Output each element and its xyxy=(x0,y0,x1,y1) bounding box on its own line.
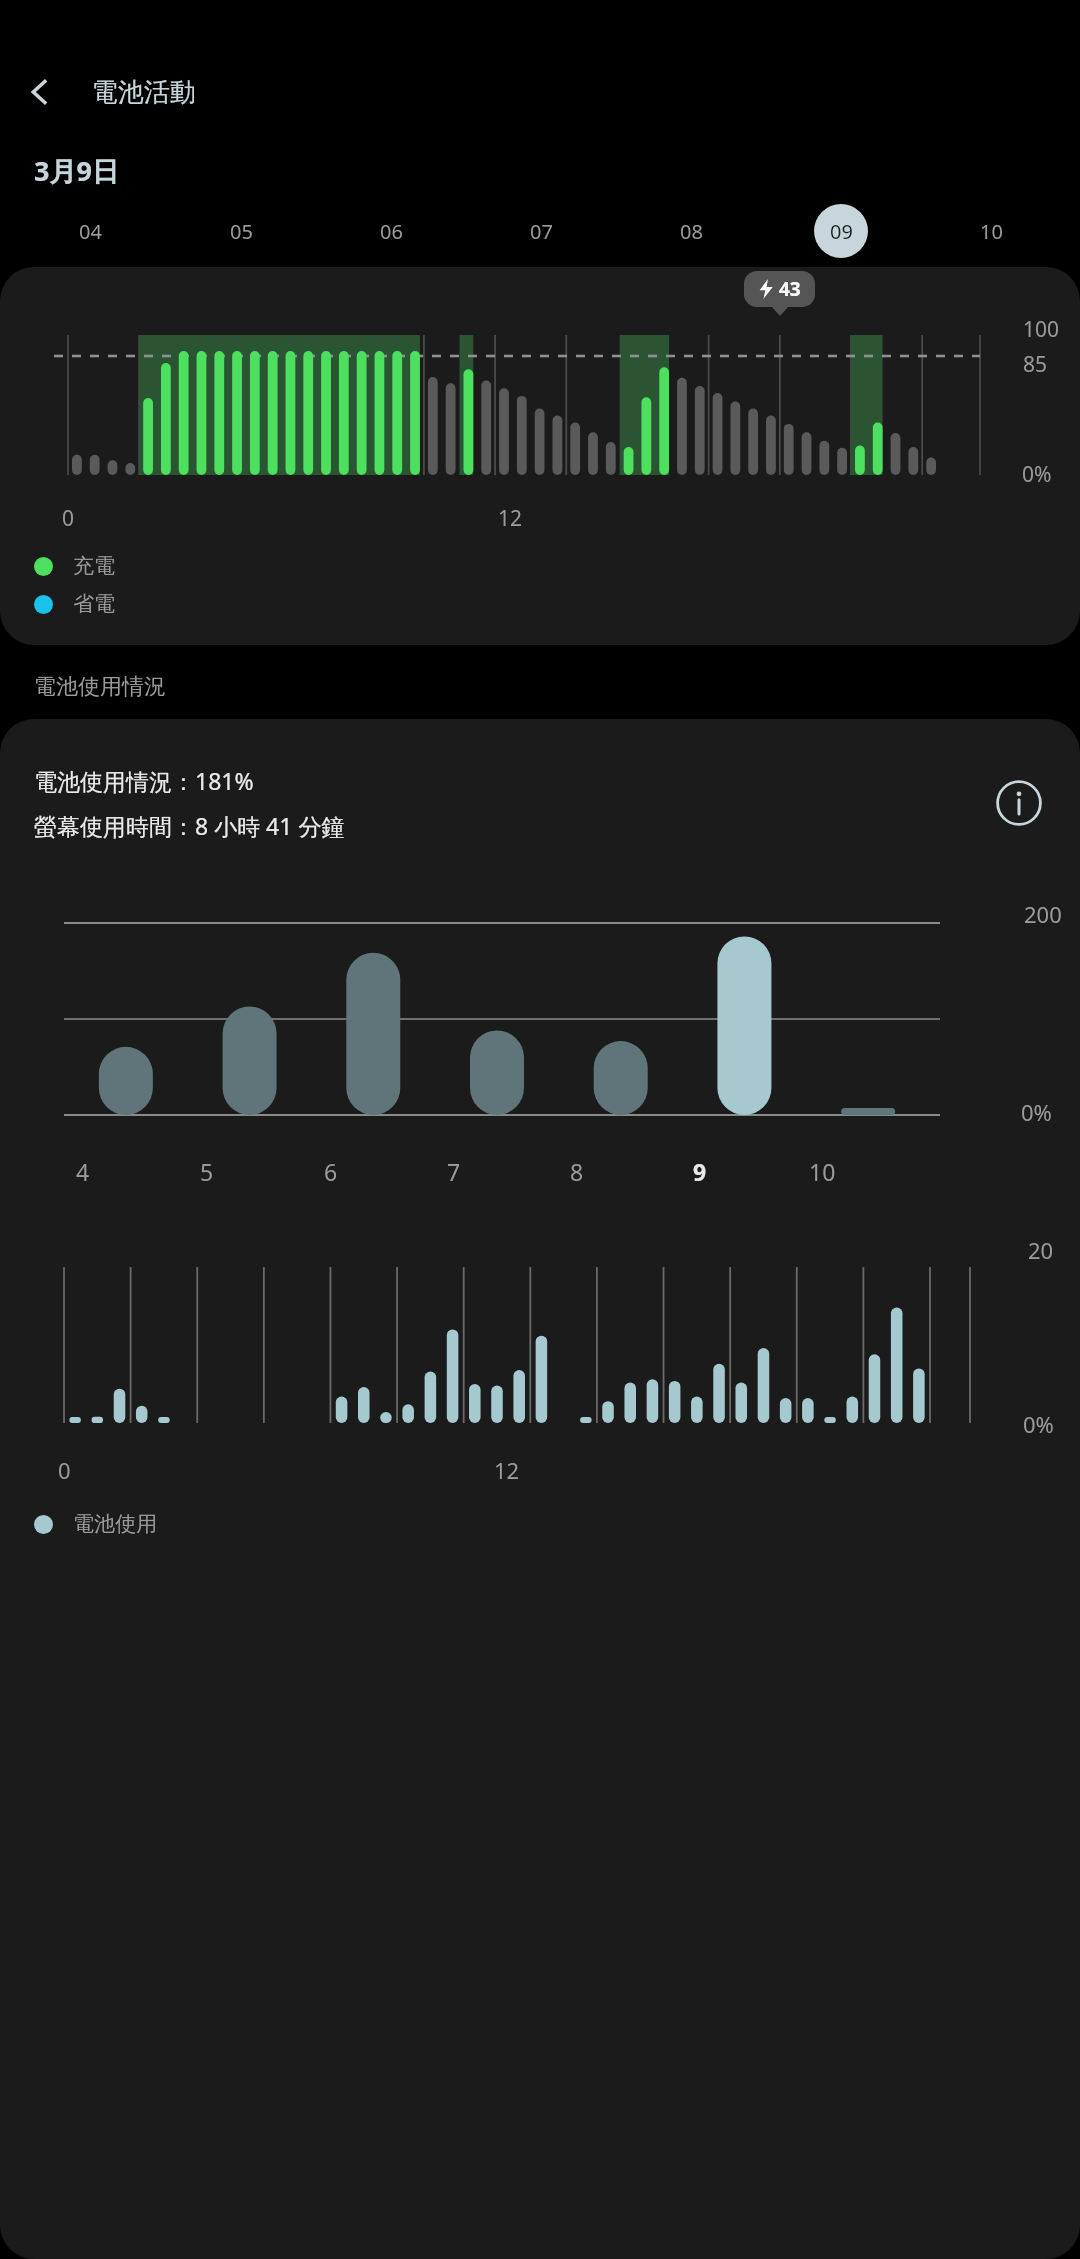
staticText: 電池使用情況：181% xyxy=(34,765,254,796)
staticText: 10 xyxy=(980,218,1003,245)
button[interactable]: 省電 xyxy=(34,591,115,617)
staticText: 07 xyxy=(530,218,553,245)
staticText: 電池使用情況 xyxy=(34,673,166,701)
staticText: 200 xyxy=(1024,899,1062,929)
staticText: 電池使用 xyxy=(73,1511,157,1537)
button[interactable]: 08 xyxy=(616,201,766,261)
staticText: 12 xyxy=(498,504,523,533)
staticText: 06 xyxy=(380,218,403,245)
staticText: 6 xyxy=(324,1156,338,1187)
button[interactable]: 電池使用 xyxy=(34,1511,157,1537)
staticText: 3月9日 xyxy=(34,152,119,189)
staticText: 省電 xyxy=(73,591,115,617)
staticText: 0% xyxy=(1021,1097,1052,1127)
button[interactable]: 07 xyxy=(466,201,616,261)
staticText: 05 xyxy=(230,218,253,245)
staticText: 08 xyxy=(680,218,703,245)
button[interactable]: 充電 xyxy=(34,553,115,579)
staticText: 螢幕使用時間：8 小時 41 分鐘 xyxy=(34,810,345,841)
staticText: 0% xyxy=(1022,460,1052,489)
staticText: 43 xyxy=(779,276,801,302)
staticText: 充電 xyxy=(73,553,115,579)
staticText: 5 xyxy=(200,1156,214,1187)
staticText: 0 xyxy=(58,1455,71,1485)
button[interactable]: 05 xyxy=(165,201,316,261)
button[interactable]: Back xyxy=(0,52,80,132)
staticText: 12 xyxy=(494,1455,520,1485)
staticText: 10 xyxy=(809,1156,836,1187)
staticText: 100 xyxy=(1023,315,1060,344)
button[interactable]: 100 xyxy=(0,267,1080,645)
button[interactable]: 10 xyxy=(916,201,1066,261)
staticText: 4 xyxy=(76,1156,90,1187)
staticText: 85 xyxy=(1023,350,1048,379)
staticText: 8 xyxy=(570,1156,584,1187)
staticText: 20 xyxy=(1028,1235,1054,1265)
staticText: 04 xyxy=(79,218,102,245)
staticText: 7 xyxy=(447,1156,461,1187)
staticText: 電池活動 xyxy=(92,76,196,109)
staticText: 0% xyxy=(1023,1409,1054,1439)
button[interactable]: 06 xyxy=(316,201,466,261)
button[interactable]: Information xyxy=(986,770,1052,836)
button[interactable]: 04 xyxy=(14,201,165,261)
staticText: 0 xyxy=(62,504,75,533)
staticText: 09 xyxy=(830,218,853,245)
button[interactable]: 09 xyxy=(766,201,916,261)
staticText: 9 xyxy=(693,1156,707,1187)
